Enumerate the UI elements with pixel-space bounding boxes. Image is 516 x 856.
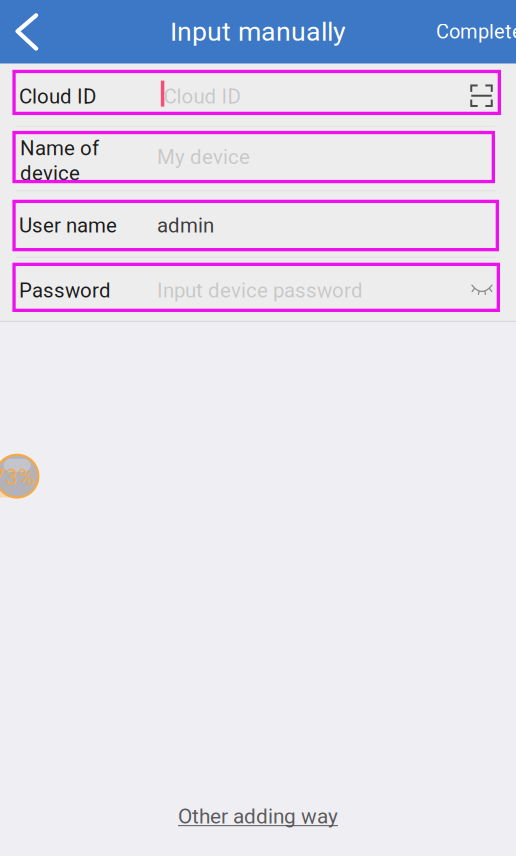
staticText: Input device password xyxy=(157,279,363,302)
button[interactable]: Back xyxy=(7,0,47,64)
staticText: Other adding way xyxy=(178,804,338,829)
button[interactable]: User name xyxy=(14,201,497,250)
staticText: Password xyxy=(19,279,111,302)
staticText: Complete xyxy=(436,20,516,43)
staticText: Cloud ID xyxy=(19,85,96,109)
staticText: Name of xyxy=(20,136,99,160)
button[interactable]: Password xyxy=(14,264,498,310)
staticText: 73% xyxy=(0,464,35,490)
staticText: My device xyxy=(157,145,250,169)
staticText: Cloud ID xyxy=(164,85,241,109)
button[interactable]: Name of xyxy=(14,133,493,182)
staticText: device xyxy=(20,161,80,185)
button[interactable]: Complete xyxy=(436,0,516,63)
button[interactable]: Other adding way xyxy=(158,799,358,833)
button[interactable]: Cloud ID xyxy=(14,71,499,113)
staticText: User name xyxy=(19,214,117,237)
staticText: Input manually xyxy=(170,16,346,47)
staticText: admin xyxy=(157,214,214,237)
